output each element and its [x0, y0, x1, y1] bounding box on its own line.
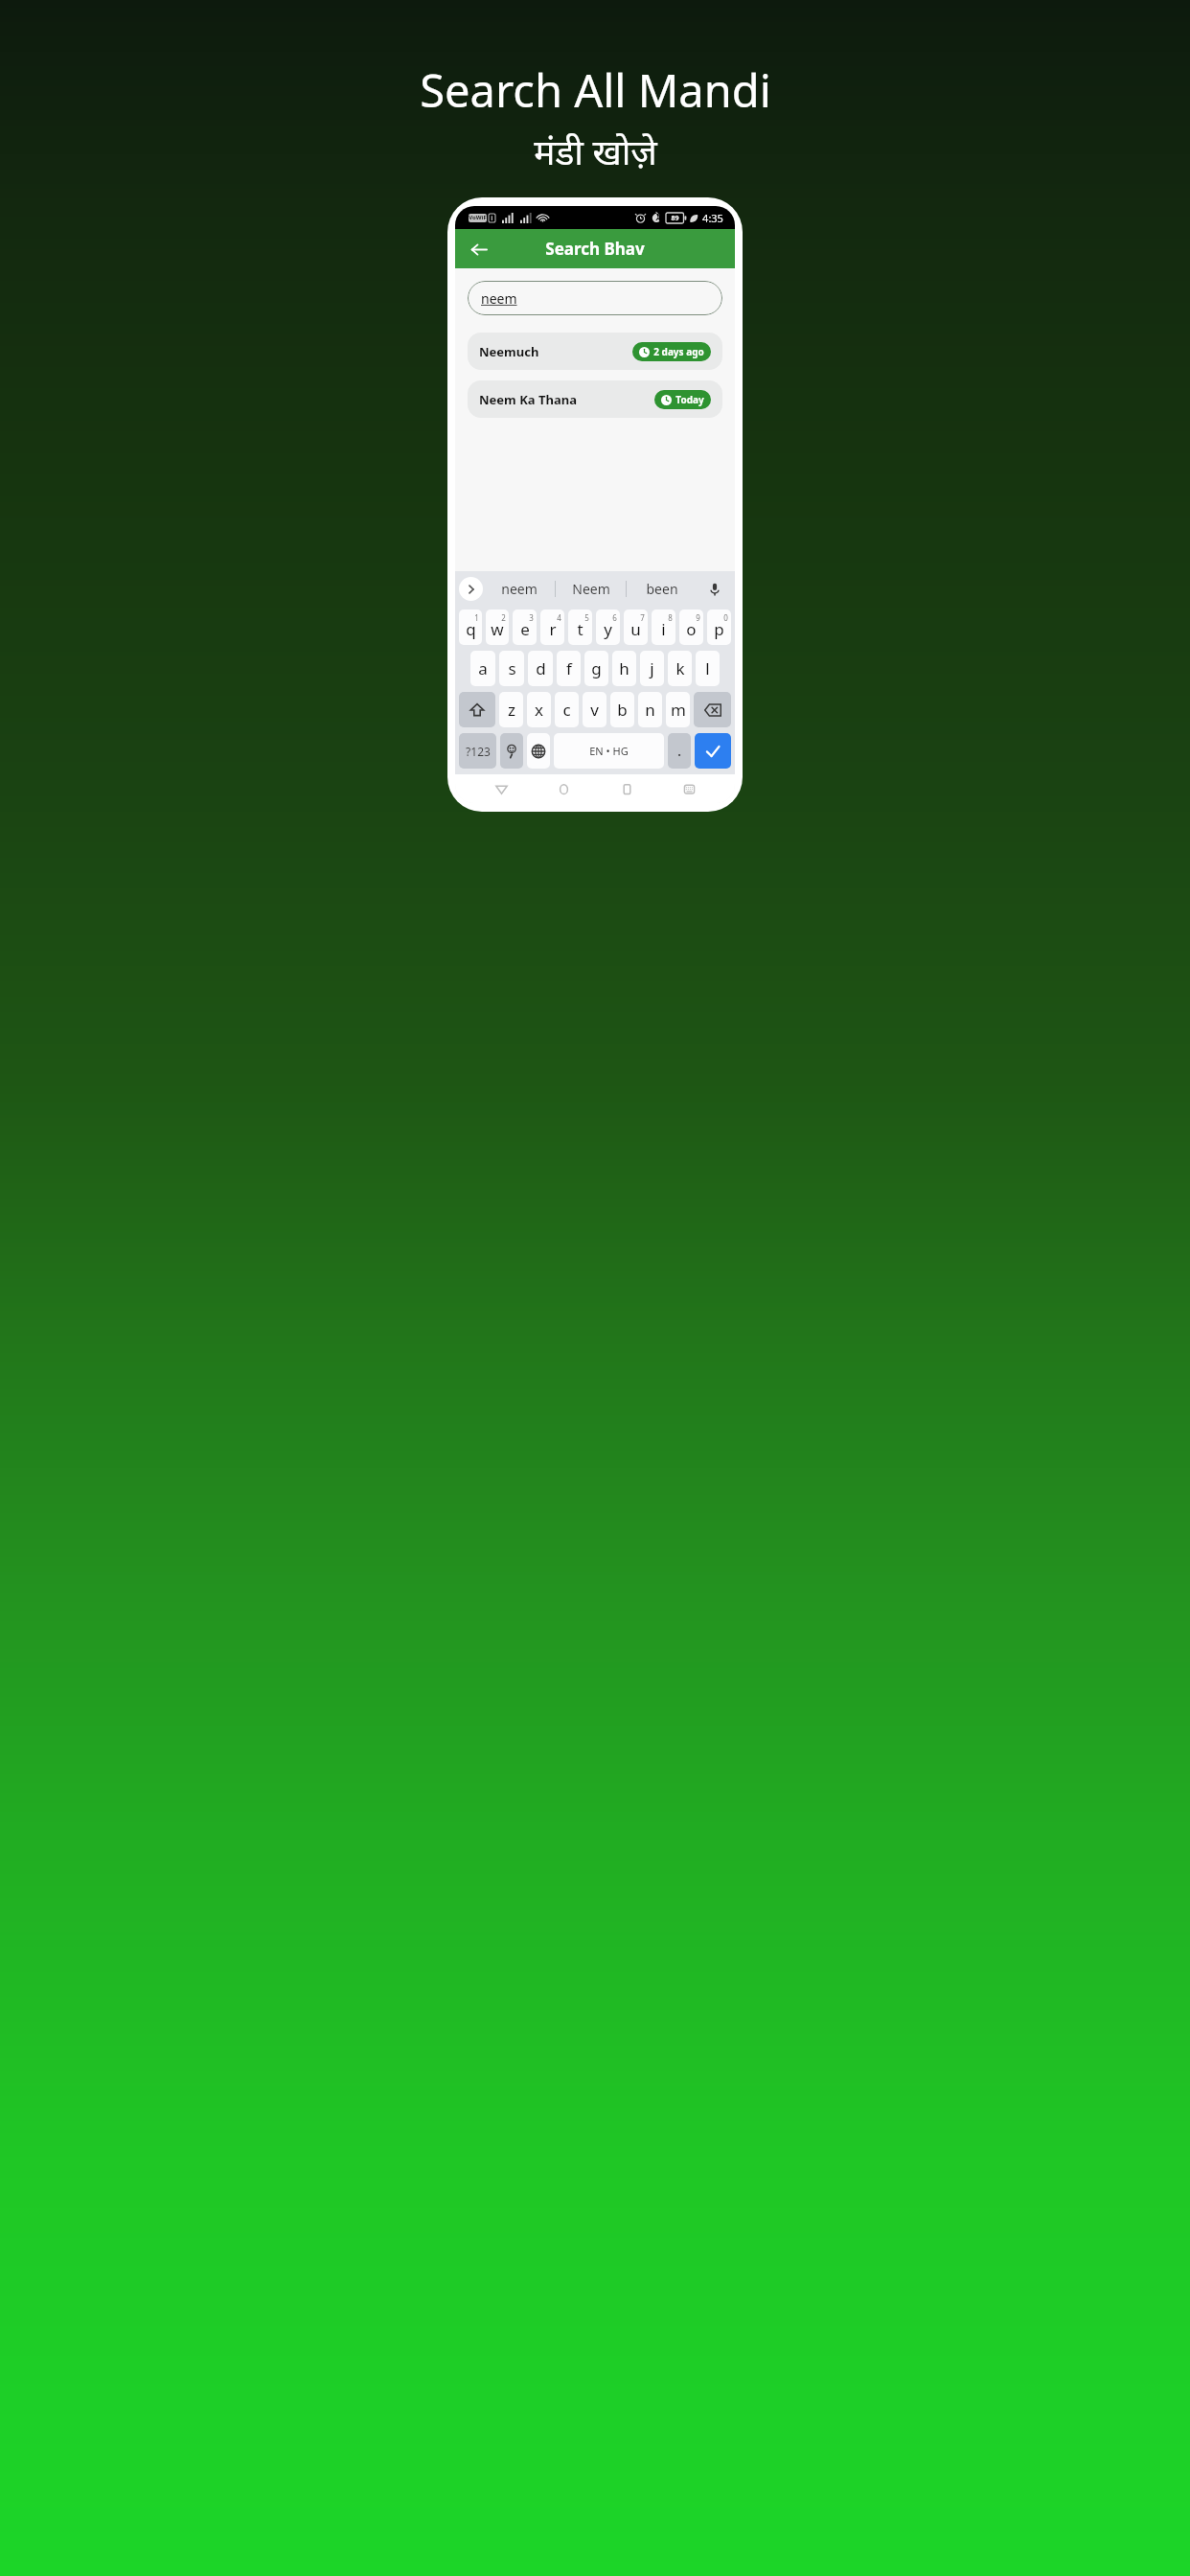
staticText: मंडी खोज़े — [534, 126, 657, 174]
button[interactable]: ?123 — [459, 733, 496, 769]
button[interactable]: Recent apps — [610, 774, 643, 803]
staticText: n — [645, 699, 655, 721]
button[interactable]: Back — [461, 232, 495, 266]
button[interactable]: v — [583, 692, 606, 727]
staticText: been — [646, 580, 678, 598]
staticText: h — [619, 657, 629, 679]
staticText: 4:35 — [702, 211, 723, 225]
button[interactable]: Hide keyboard — [673, 774, 705, 803]
staticText: g — [591, 657, 602, 679]
staticText: m — [671, 699, 686, 721]
staticText: y — [604, 618, 612, 640]
staticText: k — [675, 657, 685, 679]
button[interactable]: r — [540, 609, 564, 645]
staticText: a — [478, 657, 488, 679]
button[interactable]: Voice input — [702, 577, 727, 602]
staticText: b — [617, 699, 628, 721]
button[interactable]: m — [666, 692, 690, 727]
button[interactable]: More suggestions — [459, 577, 483, 601]
button[interactable]: s — [499, 651, 524, 686]
button[interactable]: x — [527, 692, 551, 727]
staticText: . — [677, 743, 681, 760]
staticText: d — [536, 657, 546, 679]
staticText: neem — [481, 289, 517, 308]
button[interactable]: EN • HG — [554, 733, 664, 769]
staticText: l — [705, 657, 710, 679]
button[interactable]: Emoji — [500, 733, 523, 769]
staticText: 8 — [668, 612, 673, 623]
staticText: 4 — [557, 612, 561, 623]
staticText: 6 — [612, 612, 617, 623]
button[interactable]: g — [584, 651, 608, 686]
staticText: t — [577, 618, 584, 640]
staticText: i — [661, 618, 666, 640]
staticText: 9 — [696, 612, 700, 623]
staticText: 0 — [723, 612, 728, 623]
button[interactable]: i — [652, 609, 675, 645]
button[interactable]: f — [557, 651, 581, 686]
button[interactable]: neem — [484, 571, 555, 607]
button[interactable]: z — [499, 692, 523, 727]
staticText: Search All Mandi — [420, 59, 771, 121]
staticText: VoWiFi — [469, 214, 487, 222]
staticText: j — [650, 657, 654, 679]
button[interactable]: Neem — [556, 571, 626, 607]
staticText: w — [491, 618, 504, 640]
button[interactable]: q — [459, 609, 482, 645]
button[interactable]: y — [596, 609, 620, 645]
staticText: u — [630, 618, 641, 640]
staticText: Neem Ka Thana — [479, 391, 577, 408]
staticText: c — [562, 699, 571, 721]
staticText: EN • HG — [589, 744, 629, 758]
button[interactable]: p — [707, 609, 731, 645]
button[interactable]: Neemuch — [468, 333, 722, 370]
button[interactable]: Change language — [527, 733, 550, 769]
button[interactable]: k — [668, 651, 692, 686]
staticText: 3 — [529, 612, 534, 623]
staticText: x — [535, 699, 543, 721]
staticText: p — [714, 618, 724, 640]
staticText: Neem — [572, 580, 610, 598]
staticText: 5 — [584, 612, 589, 623]
button[interactable]: a — [470, 651, 495, 686]
button[interactable]: Enter — [695, 733, 731, 769]
button[interactable]: t — [568, 609, 592, 645]
button[interactable]: j — [640, 651, 664, 686]
staticText: 2 — [501, 612, 506, 623]
button[interactable]: o — [679, 609, 703, 645]
staticText: r — [549, 618, 557, 640]
staticText: Search Bhav — [545, 238, 645, 260]
button[interactable]: w — [486, 609, 509, 645]
button[interactable]: been — [627, 571, 697, 607]
staticText: ?123 — [466, 744, 491, 759]
button[interactable]: b — [610, 692, 634, 727]
button[interactable]: d — [528, 651, 553, 686]
staticText: 1 — [474, 612, 479, 623]
staticText: q — [466, 618, 476, 640]
button[interactable]: e — [513, 609, 537, 645]
staticText: 2 days ago — [653, 345, 704, 358]
button[interactable]: Shift — [459, 692, 495, 727]
button[interactable]: . — [668, 733, 691, 769]
staticText: neem — [501, 580, 538, 598]
staticText: f — [566, 657, 572, 679]
button[interactable]: c — [555, 692, 579, 727]
staticText: 89 — [671, 214, 679, 223]
button[interactable]: h — [612, 651, 636, 686]
button[interactable]: neem — [468, 281, 722, 315]
button[interactable]: Home — [547, 774, 580, 803]
button[interactable]: Backspace — [694, 692, 731, 727]
staticText: v — [590, 699, 599, 721]
button[interactable]: Neem Ka Thana — [468, 380, 722, 418]
staticText: o — [686, 618, 697, 640]
staticText: Neemuch — [479, 343, 539, 360]
button[interactable]: Back — [485, 774, 517, 803]
button[interactable]: l — [696, 651, 720, 686]
staticText: e — [520, 618, 530, 640]
staticText: s — [508, 657, 516, 679]
button[interactable]: u — [624, 609, 648, 645]
button[interactable]: n — [638, 692, 662, 727]
staticText: 7 — [640, 612, 645, 623]
staticText: z — [508, 699, 515, 721]
staticText: Today — [675, 393, 704, 406]
